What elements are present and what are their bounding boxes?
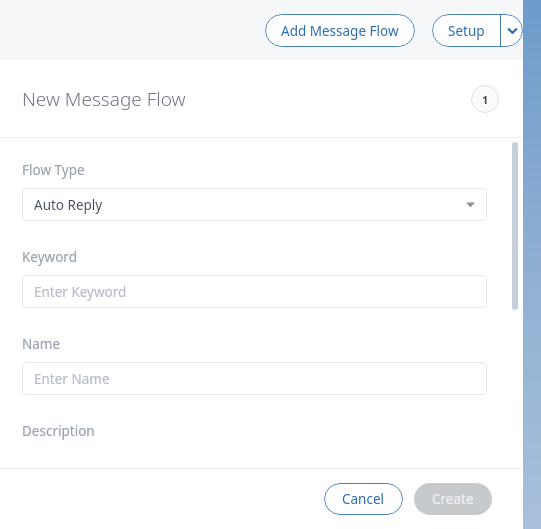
staticText: Keyword bbox=[22, 248, 77, 266]
button[interactable]: Cancel bbox=[324, 483, 403, 515]
staticText: Description bbox=[22, 422, 95, 440]
staticText: Enter Keyword bbox=[34, 283, 127, 301]
staticText: Cancel bbox=[342, 490, 385, 508]
staticText: 1 bbox=[482, 92, 489, 107]
button[interactable]: More setup options bbox=[501, 14, 523, 47]
staticText: Setup bbox=[448, 22, 485, 40]
staticText: Enter Name bbox=[34, 370, 110, 388]
button[interactable]: Add Message Flow bbox=[265, 14, 415, 47]
button[interactable]: Auto Reply bbox=[22, 188, 487, 221]
staticText: Flow Type bbox=[22, 161, 85, 179]
staticText: Add Message Flow bbox=[281, 22, 399, 40]
staticText: Auto Reply bbox=[34, 196, 103, 214]
button[interactable]: 1 bbox=[471, 85, 499, 113]
button[interactable]: Create bbox=[414, 483, 492, 515]
staticText: Name bbox=[22, 335, 61, 353]
button[interactable]: Enter Keyword bbox=[22, 275, 487, 308]
staticText: New Message Flow bbox=[22, 86, 186, 112]
button[interactable]: Setup bbox=[432, 14, 500, 47]
button[interactable]: Enter Name bbox=[22, 362, 487, 395]
staticText: Create bbox=[432, 490, 474, 508]
